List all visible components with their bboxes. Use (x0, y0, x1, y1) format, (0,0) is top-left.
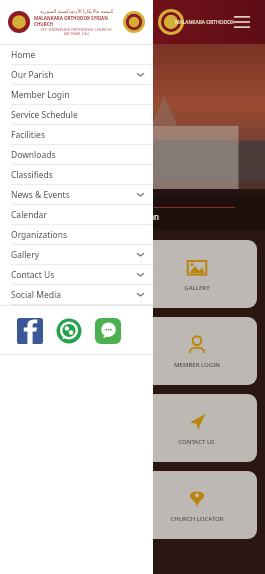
button[interactable]: Facilities (0, 125, 153, 144)
staticText: Member Login (11, 89, 70, 101)
staticText: كنيسة مالانكارا الأرثوذكسية السورية (40, 8, 114, 15)
button[interactable] (8, 240, 128, 308)
staticText: CHURCH LOCATOR (170, 515, 224, 523)
button[interactable]: Close navigation menu (231, 11, 253, 33)
staticText: Contact Us (11, 269, 55, 281)
staticText: MALANKARA ORTHODOX SYRIAN CHURCH (34, 15, 119, 27)
button[interactable]: GALLERY (136, 240, 257, 308)
staticText: St. Dionysius Church (6, 197, 64, 205)
button[interactable]: SMS (95, 318, 121, 344)
staticText: Our Parish (11, 69, 54, 81)
button[interactable]: Organizations (0, 225, 153, 244)
staticText: Home (11, 49, 36, 61)
button[interactable]: Member Login (0, 85, 153, 104)
button[interactable]: Gallery (0, 245, 153, 264)
button[interactable]: News & Events (0, 185, 153, 204)
button[interactable]: MEMBER LOGIN (136, 317, 257, 385)
staticText: News & Events (11, 189, 70, 201)
button[interactable]: WhatsApp (56, 318, 82, 344)
button[interactable]: Our Parish (0, 65, 153, 84)
button[interactable]: CHURCH LOCATOR (136, 471, 257, 539)
staticText: (ST. DIONYSIUS ORTHODOX CHURCH) (41, 27, 112, 32)
button[interactable]: Downloads (0, 145, 153, 164)
staticText: MALANKARA ORTHODOX (175, 19, 235, 26)
button[interactable]: Classifieds (0, 165, 153, 184)
button[interactable]: Home (0, 45, 153, 64)
button[interactable] (8, 317, 128, 385)
staticText: Calendar (11, 209, 47, 221)
staticText: The Holy Cross was excavated in sand an (6, 211, 159, 222)
staticText: Classifieds (11, 169, 53, 181)
staticText: Gallery (11, 249, 39, 261)
button[interactable]: Facebook (17, 318, 43, 344)
staticText: ABU DHABI, U.A.E. (64, 32, 90, 36)
button[interactable]: Calendar (0, 205, 153, 224)
staticText: CONTACT US (178, 438, 215, 446)
staticText: Facilities (11, 129, 45, 141)
staticText: Organizations (11, 229, 67, 241)
staticText: Service Schedule (11, 109, 78, 121)
staticText: Social Media (11, 289, 61, 301)
staticText: GALLERY (184, 284, 210, 292)
staticText: Downloads (11, 149, 56, 161)
staticText: MEMBER LOGIN (174, 361, 220, 369)
button[interactable]: Service Schedule (0, 105, 153, 124)
button[interactable]: Social Media (0, 285, 153, 304)
button[interactable]: CONTACT US (136, 394, 257, 462)
button[interactable]: Contact Us (0, 265, 153, 284)
